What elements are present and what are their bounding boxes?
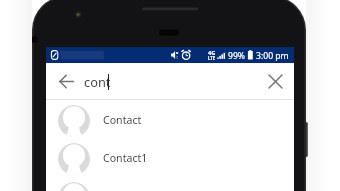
staticText: 4G: [208, 49, 216, 57]
staticText: Contact: [103, 113, 142, 127]
button[interactable]: Contact1: [46, 140, 294, 178]
button[interactable]: Back: [50, 65, 82, 97]
staticText: 99%: [228, 50, 245, 62]
staticText: LTE: [208, 55, 216, 61]
button[interactable]: Clear search: [259, 65, 291, 97]
button[interactable]: Contact2: [46, 179, 294, 191]
staticText: Contact1: [103, 151, 148, 165]
staticText: cont: [84, 73, 111, 90]
staticText: 3:00 pm: [256, 50, 289, 62]
button[interactable]: Contact: [46, 102, 294, 140]
